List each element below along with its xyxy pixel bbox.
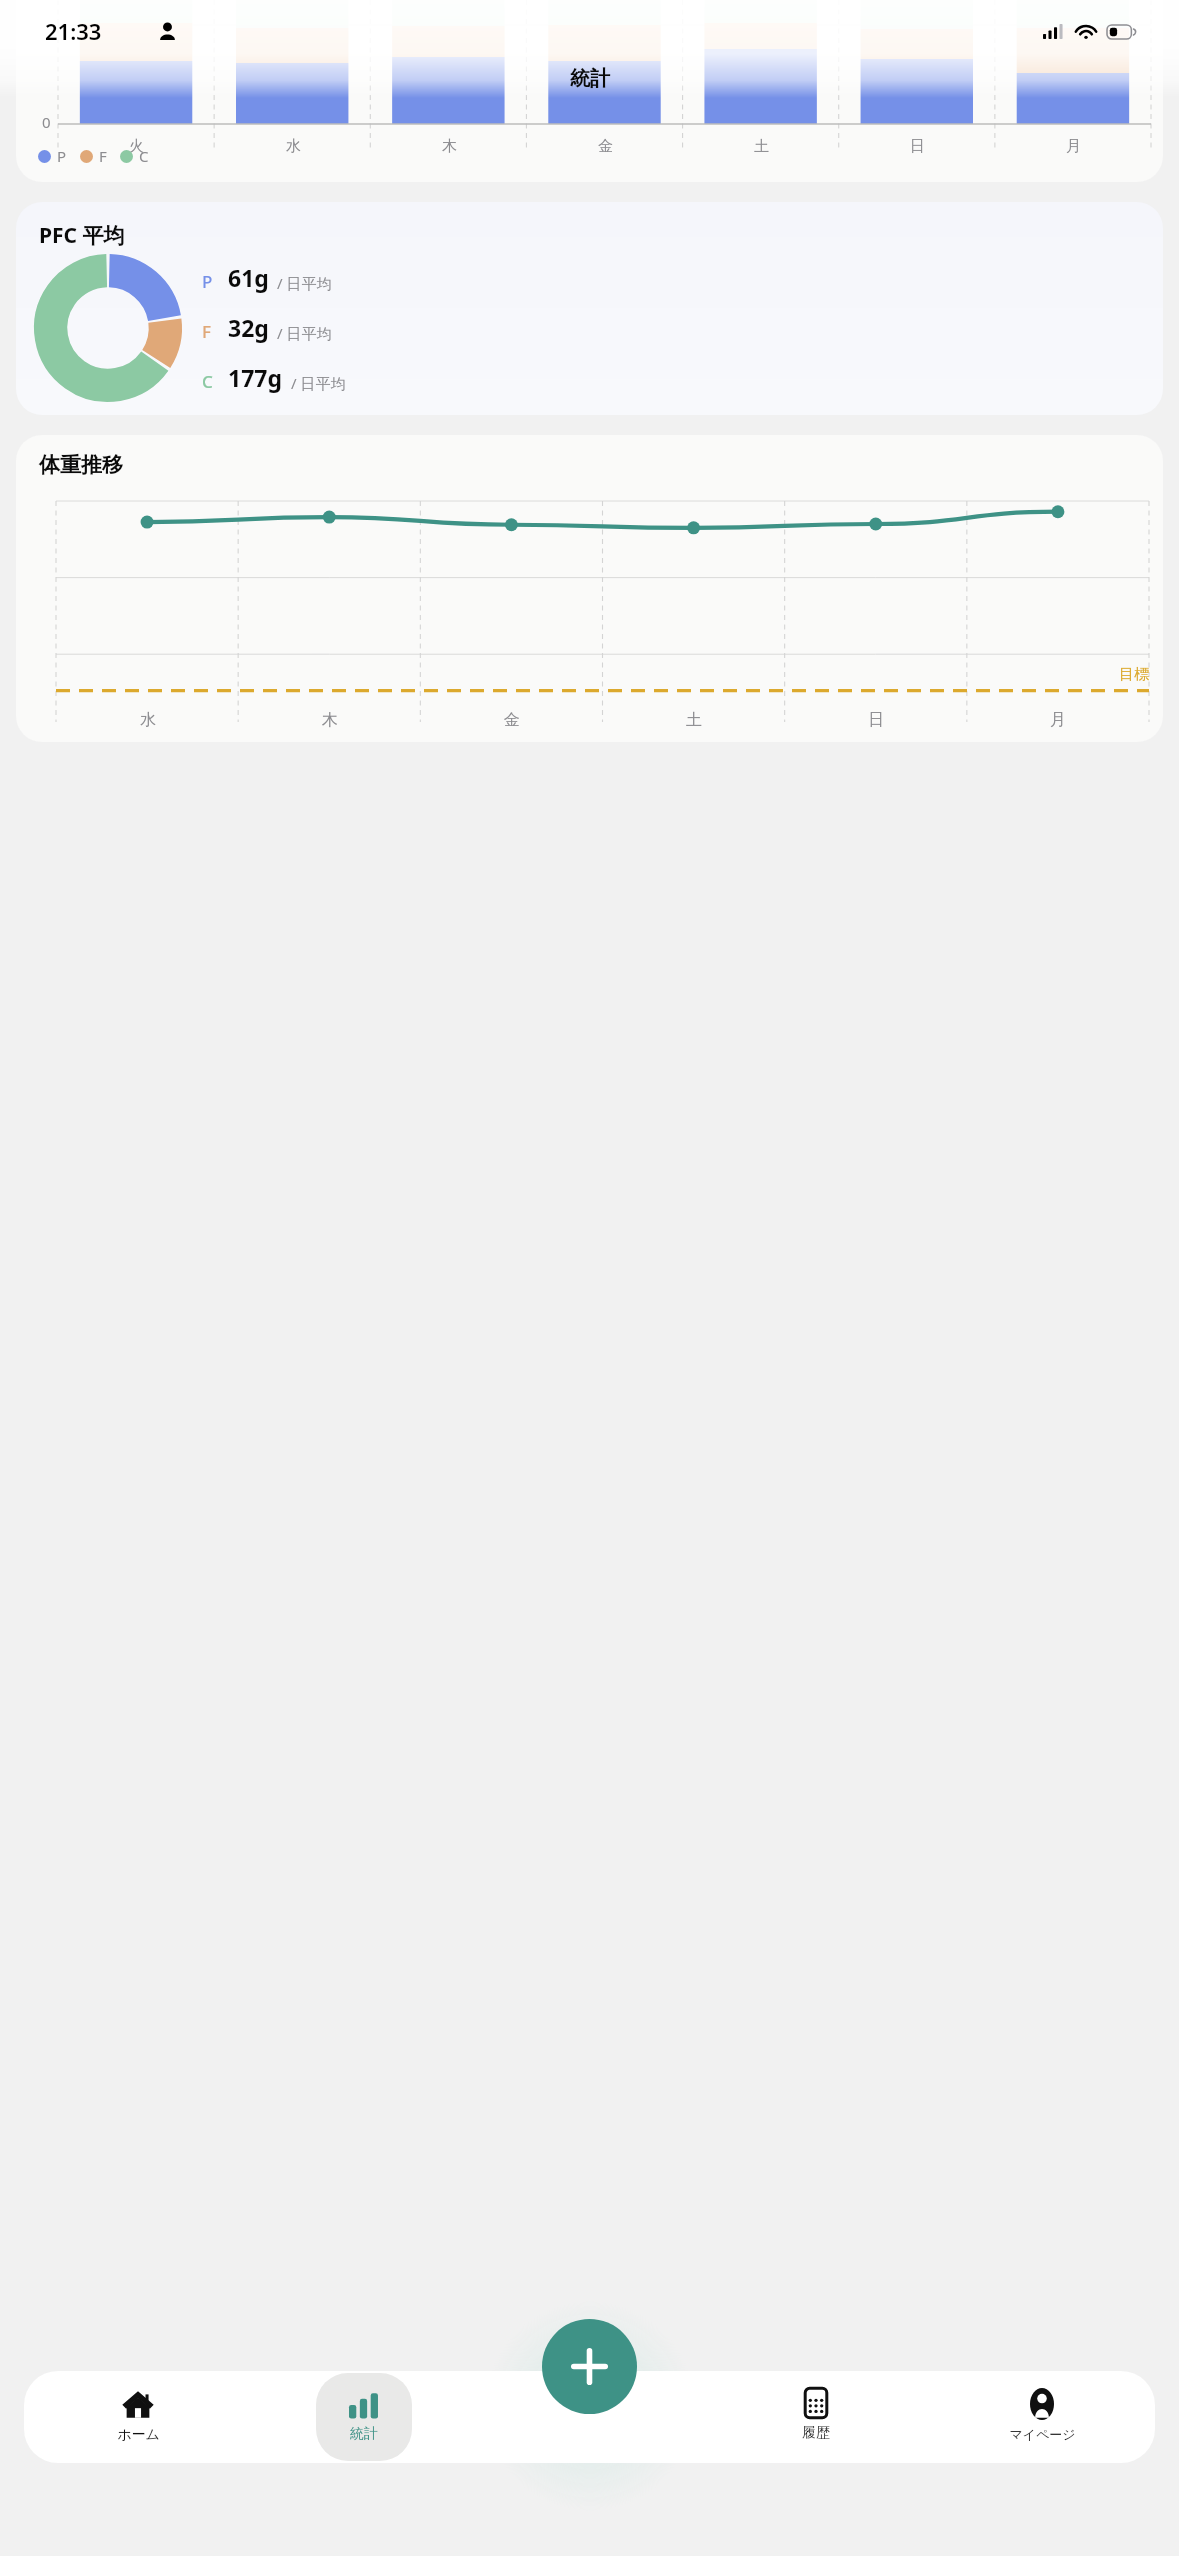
button[interactable]: 履歴: [768, 2373, 864, 2461]
button[interactable]: 0: [16, 0, 1163, 182]
staticText: F: [99, 146, 107, 166]
staticText: 体重推移: [39, 452, 123, 478]
button[interactable]: マイページ: [994, 2373, 1090, 2461]
staticText: / 日平均: [277, 273, 332, 293]
staticText: / 日平均: [291, 373, 346, 393]
button[interactable]: 記録を追加: [542, 2319, 637, 2414]
button[interactable]: 体重推移: [16, 435, 1163, 742]
other: ホーム: [122, 2388, 154, 2420]
staticText: 0: [42, 112, 51, 132]
other: 履歴: [801, 2388, 831, 2418]
staticText: 金: [504, 710, 520, 730]
staticText: 統計: [570, 66, 610, 91]
staticText: C: [202, 370, 213, 393]
staticText: 月: [1066, 137, 1081, 156]
staticText: マイページ: [1009, 2426, 1076, 2442]
staticText: F: [202, 320, 211, 343]
staticText: P: [202, 270, 213, 293]
staticText: 32g: [228, 312, 269, 343]
staticText: 日: [868, 710, 884, 730]
other: マイページ: [1026, 2388, 1058, 2420]
staticText: P: [57, 146, 67, 166]
staticText: 21:33: [45, 16, 102, 46]
staticText: 目標: [1119, 665, 1149, 684]
staticText: 履歴: [802, 2424, 830, 2442]
staticText: ホーム: [117, 2426, 160, 2444]
staticText: C: [139, 146, 149, 166]
staticText: 統計: [350, 2425, 378, 2443]
staticText: 木: [322, 710, 338, 730]
staticText: PFC 平均: [39, 221, 125, 250]
staticText: 177g: [228, 362, 283, 393]
staticText: / 日平均: [277, 323, 332, 343]
staticText: 月: [1050, 710, 1066, 730]
other: 統計: [349, 2388, 380, 2419]
staticText: 土: [754, 137, 769, 156]
staticText: 日: [910, 137, 925, 156]
staticText: 水: [140, 710, 156, 730]
staticText: 木: [442, 137, 457, 156]
staticText: 火: [129, 137, 144, 156]
staticText: 土: [686, 710, 702, 730]
staticText: 水: [286, 137, 301, 156]
staticText: 金: [598, 137, 613, 156]
button[interactable]: 統計: [316, 2373, 412, 2461]
button[interactable]: PFC 平均: [16, 202, 1163, 415]
staticText: 61g: [228, 262, 269, 293]
button[interactable]: ホーム: [90, 2373, 186, 2461]
